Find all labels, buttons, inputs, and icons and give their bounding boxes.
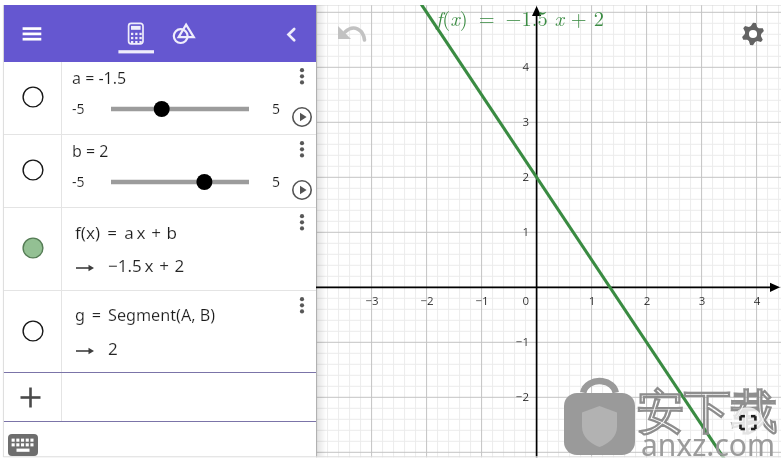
staticText: −2 [413,293,441,309]
staticText: 1 [578,293,606,309]
button[interactable]: Keyboard [8,434,38,456]
staticText: 2 [108,337,118,360]
staticText: 0 [505,293,529,309]
button[interactable]: Menu [14,17,50,45]
button[interactable]: More options [291,209,313,231]
button[interactable]: a = -1.5 [62,62,316,134]
staticText: f(x) = a x + b [75,221,178,244]
staticText: 3 [688,293,716,309]
staticText: 4 [743,293,771,309]
button[interactable]: Show object [0,291,61,372]
button[interactable]: Animate [292,180,312,200]
staticText: 5 [272,99,281,118]
staticText: 1 [505,224,529,240]
button[interactable]: f(x) = a x + b [62,208,316,290]
button[interactable]: Add input [0,373,61,421]
button[interactable]: Calculator [114,14,158,60]
staticText: g = Segment(A, B) [75,304,216,326]
button[interactable]: Show object [0,62,61,134]
staticText: −3 [358,293,386,309]
staticText: anxz.com [641,424,775,459]
button[interactable]: Animate [292,107,312,127]
button[interactable]: Hide object [0,208,61,290]
staticText: 4 [505,59,529,75]
button[interactable]: More options [291,136,313,158]
button[interactable]: Show object [0,135,61,207]
staticText: −1 [505,334,529,350]
button[interactable]: Undo [336,20,366,50]
staticText: a = -1.5 [72,67,127,89]
staticText: 安下载 [637,383,778,442]
staticText: −1 [468,293,496,309]
button[interactable]: More options [291,63,313,85]
staticText: -5 [72,172,85,191]
staticText: -5 [72,99,85,118]
staticText: f(x) = −1.5 x + 2 [436,3,604,32]
staticText: 3 [505,114,529,130]
button[interactable]: More options [291,292,313,314]
button[interactable]: Collapse panel [279,20,305,46]
button[interactable]: Geometry [168,19,196,47]
staticText: 2 [505,169,529,185]
staticText: 5 [272,172,281,191]
button[interactable]: b = 2 [62,135,316,207]
staticText: −2 [505,389,529,405]
staticText: b = 2 [72,140,109,162]
staticText: 2 [633,293,661,309]
staticText: −1.5 x + 2 [108,254,185,277]
button[interactable]: Settings [741,22,765,46]
button[interactable]: Center view [731,407,764,440]
button[interactable]: g = Segment(A, B) [62,291,316,372]
